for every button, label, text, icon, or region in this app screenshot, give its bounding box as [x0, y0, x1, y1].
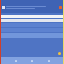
- button[interactable]: Profile: [47, 58, 51, 63]
- button[interactable]: Search: [30, 58, 34, 63]
- button[interactable]: Action: [59, 6, 62, 9]
- button[interactable]: Menu: [1, 2, 63, 13]
- button[interactable]: Home: [14, 58, 18, 63]
- button[interactable]: Add: [58, 52, 61, 55]
